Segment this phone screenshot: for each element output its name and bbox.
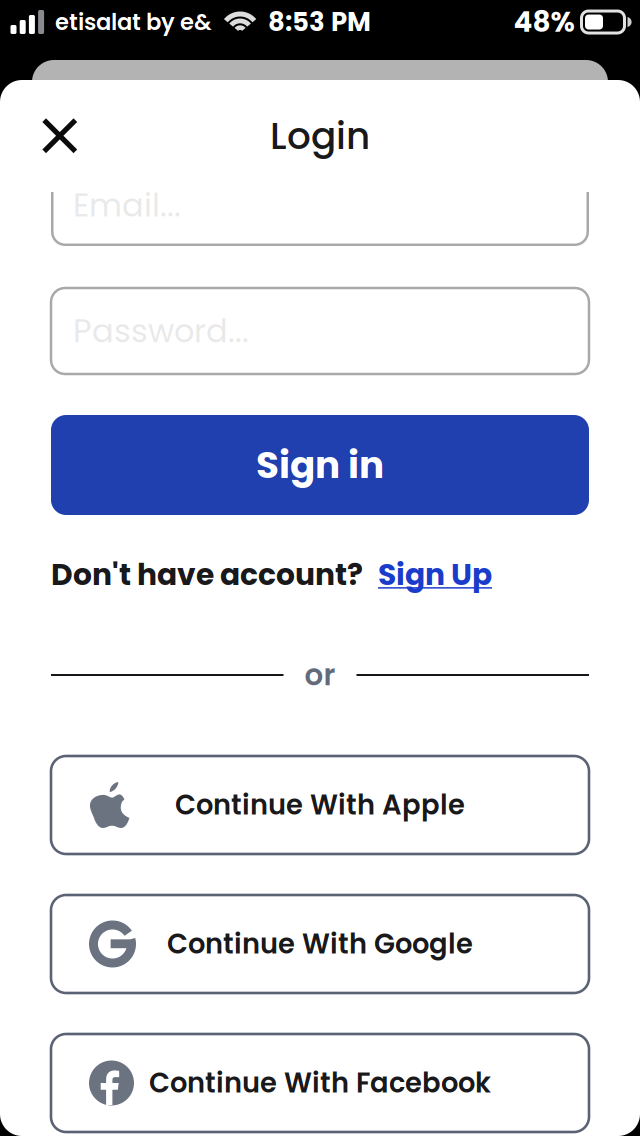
staticText: etisalat by e& bbox=[55, 6, 212, 38]
staticText: Login bbox=[270, 110, 370, 162]
staticText: Continue With Apple bbox=[175, 786, 465, 824]
staticText: Email... bbox=[73, 183, 181, 228]
button[interactable]: Sign in bbox=[51, 415, 589, 515]
button[interactable]: Continue With Google bbox=[51, 895, 589, 993]
button[interactable]: Continue With Facebook bbox=[51, 1034, 589, 1132]
button[interactable]: Sign Up bbox=[363, 554, 492, 595]
staticText: Sign Up bbox=[378, 554, 492, 595]
staticText: Sign in bbox=[256, 439, 384, 491]
staticText: Don't have account? bbox=[51, 554, 363, 595]
staticText: Continue With Facebook bbox=[149, 1064, 491, 1102]
button[interactable]: Continue With Apple bbox=[51, 756, 589, 854]
staticText: 48% bbox=[513, 2, 574, 42]
staticText: Password... bbox=[73, 309, 249, 353]
staticText: 8:53 PM bbox=[268, 4, 371, 40]
button[interactable]: Close bbox=[32, 108, 88, 164]
staticText: Continue With Google bbox=[167, 925, 473, 963]
staticText: or bbox=[304, 654, 335, 696]
